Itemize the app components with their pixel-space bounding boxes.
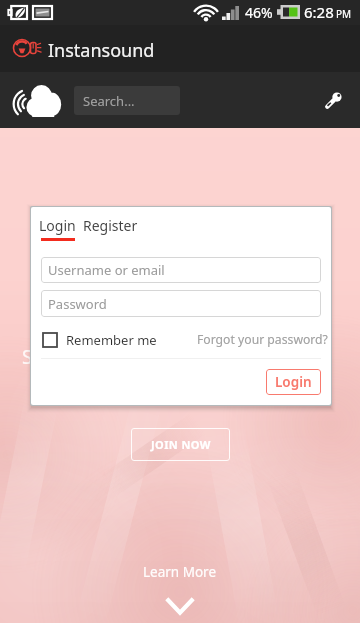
- staticText: Search...: [83, 92, 135, 110]
- button[interactable]: Search...: [74, 86, 180, 115]
- button[interactable]: Register: [83, 216, 138, 235]
- button[interactable]: Password: [41, 290, 321, 317]
- button[interactable]: JOIN NOW: [131, 428, 230, 461]
- staticText: Instansound: [48, 38, 155, 63]
- staticText: Learn More: [143, 563, 217, 581]
- staticText: Username or email: [48, 261, 165, 279]
- staticText: 6:28: [304, 2, 334, 22]
- staticText: Register: [83, 216, 138, 235]
- button[interactable]: Username or email: [41, 257, 321, 283]
- staticText: Share your sound: [22, 344, 180, 370]
- button[interactable]: Login: [266, 369, 321, 395]
- staticText: JOIN NOW: [151, 437, 211, 452]
- button[interactable]: Forgot your password?: [197, 331, 328, 348]
- button[interactable]: Remember me: [43, 331, 157, 349]
- staticText: Password: [48, 295, 107, 313]
- staticText: PM: [336, 7, 352, 21]
- staticText: Remember me: [66, 331, 157, 349]
- button[interactable]: Sign in: [318, 86, 348, 115]
- staticText: Login: [275, 373, 312, 391]
- button[interactable]: Learn More: [0, 563, 360, 615]
- staticText: 46%: [245, 3, 273, 22]
- button[interactable]: Login: [39, 216, 76, 235]
- staticText: Login: [39, 216, 76, 235]
- staticText: Forgot your password?: [197, 331, 328, 348]
